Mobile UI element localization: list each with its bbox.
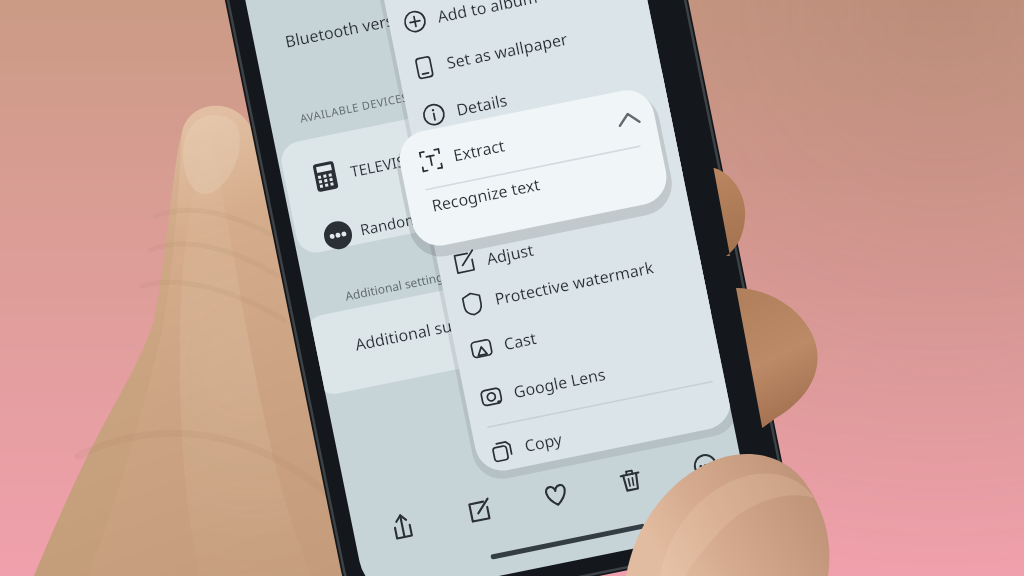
button[interactable]: [0, 0, 1024, 576]
